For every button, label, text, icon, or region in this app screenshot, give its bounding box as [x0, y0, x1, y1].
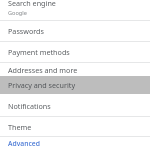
staticText: Payment methods [8, 47, 70, 57]
staticText: Theme [8, 122, 32, 132]
staticText: Notifications [8, 101, 51, 111]
staticText: Search engine [8, 0, 56, 8]
staticText: Passwords [8, 26, 44, 36]
staticText: Addresses and more [8, 65, 78, 75]
button[interactable]: Payment methods [0, 42, 150, 62]
staticText: Advanced [8, 139, 40, 148]
button[interactable]: Search engine [0, 0, 150, 20]
button[interactable]: Advanced [0, 137, 150, 150]
staticText: Privacy and security [8, 80, 76, 90]
button[interactable]: Privacy and security [0, 76, 150, 94]
button[interactable]: Theme [0, 117, 150, 136]
button[interactable]: Addresses and more [0, 63, 150, 76]
button[interactable]: Notifications [0, 95, 150, 116]
staticText: Google [8, 9, 27, 17]
button[interactable]: Passwords [0, 21, 150, 41]
